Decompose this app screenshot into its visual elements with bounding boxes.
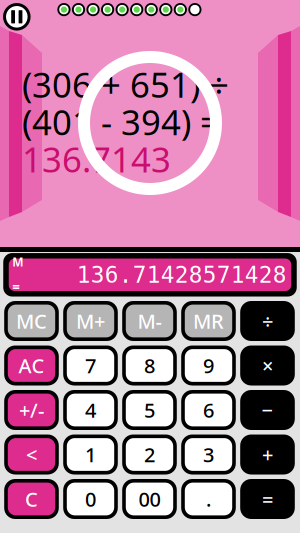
- staticText: =: [12, 278, 20, 296]
- staticText: 1: [85, 441, 96, 468]
- staticText: M+: [76, 308, 105, 334]
- button[interactable]: AC: [4, 345, 59, 385]
- button[interactable]: 5: [122, 390, 177, 430]
- button[interactable]: ÷: [240, 301, 295, 341]
- button[interactable]: −: [240, 390, 295, 430]
- button[interactable]: 0: [63, 479, 118, 519]
- button[interactable]: 6: [181, 390, 236, 430]
- button[interactable]: 3: [181, 434, 236, 474]
- staticText: MR: [193, 308, 224, 334]
- button[interactable]: 2: [122, 434, 177, 474]
- staticText: ×: [262, 352, 273, 379]
- staticText: (401 - 394) =: [22, 99, 220, 145]
- button[interactable]: M+: [63, 301, 118, 341]
- staticText: +/-: [19, 397, 44, 423]
- staticText: AC: [18, 352, 44, 379]
- staticText: 136.7143: [22, 136, 171, 182]
- staticText: 3: [203, 441, 214, 468]
- staticText: 7: [85, 352, 96, 379]
- button[interactable]: M-: [122, 301, 177, 341]
- staticText: M: [12, 254, 23, 270]
- staticText: =: [262, 486, 273, 512]
- staticText: <: [26, 441, 37, 468]
- button[interactable]: <: [4, 434, 59, 474]
- staticText: M-: [137, 308, 161, 334]
- staticText: 9: [203, 352, 214, 379]
- button[interactable]: 7: [63, 345, 118, 385]
- staticText: 5: [144, 397, 155, 423]
- staticText: 00: [138, 486, 160, 512]
- button[interactable]: ×: [240, 345, 295, 385]
- staticText: +: [262, 441, 273, 468]
- button[interactable]: .: [181, 479, 236, 519]
- staticText: 136.71428571428: [77, 262, 287, 288]
- staticText: 0: [85, 486, 96, 512]
- button[interactable]: 1: [63, 434, 118, 474]
- staticText: 4: [85, 397, 96, 423]
- staticText: 8: [144, 352, 155, 379]
- button[interactable]: =: [240, 479, 295, 519]
- staticText: 2: [144, 441, 155, 468]
- button[interactable]: +/-: [4, 390, 59, 430]
- staticText: MC: [16, 308, 47, 334]
- staticText: 6: [203, 397, 214, 423]
- button[interactable]: 00: [122, 479, 177, 519]
- staticText: ÷: [262, 308, 273, 334]
- button[interactable]: MR: [181, 301, 236, 341]
- staticText: (306 + 651) ÷: [22, 61, 229, 107]
- button[interactable]: C: [4, 479, 59, 519]
- button[interactable]: Pause: [0, 0, 34, 34]
- staticText: −: [261, 397, 273, 423]
- staticText: C: [25, 486, 38, 512]
- button[interactable]: 4: [63, 390, 118, 430]
- staticText: .: [206, 486, 211, 512]
- button[interactable]: MC: [4, 301, 59, 341]
- button[interactable]: 8: [122, 345, 177, 385]
- button[interactable]: +: [240, 434, 295, 474]
- button[interactable]: 9: [181, 345, 236, 385]
